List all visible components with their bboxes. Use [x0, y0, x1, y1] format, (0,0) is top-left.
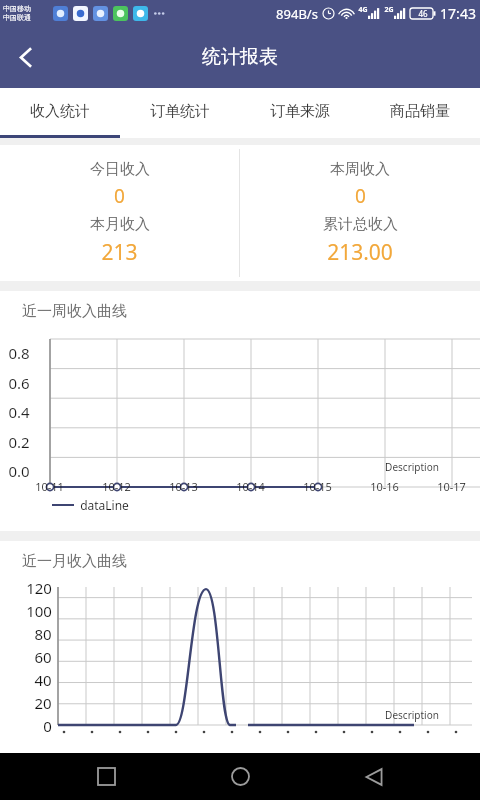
staticText: 100 [26, 601, 52, 621]
button[interactable]: 订单来源 [240, 88, 360, 138]
button[interactable]: Back [0, 31, 52, 83]
button[interactable]: Recent apps [78, 753, 134, 800]
button[interactable]: 本周收入 [240, 145, 480, 281]
staticText: 10-14 [236, 479, 265, 494]
staticText: 收入统计 [30, 102, 90, 121]
staticText: 本周收入 [330, 160, 390, 179]
staticText: Description [385, 708, 439, 722]
staticText: 10-15 [303, 479, 332, 494]
staticText: 17:43 [440, 4, 476, 23]
staticText: 0.6 [8, 373, 30, 393]
staticText: 10-13 [169, 479, 198, 494]
staticText: 40 [34, 670, 52, 690]
staticText: 10-12 [102, 479, 131, 494]
staticText: 本月收入 [90, 215, 150, 234]
button[interactable]: 近一月收入曲线 [0, 541, 480, 753]
staticText: 213 [101, 238, 138, 267]
staticText: 4G [358, 5, 368, 15]
staticText: 0 [43, 716, 52, 736]
staticText: 近一周收入曲线 [22, 302, 127, 321]
button[interactable]: 订单统计 [120, 88, 240, 138]
staticText: dataLine [80, 497, 129, 513]
staticText: 今日收入 [90, 160, 150, 179]
staticText: 商品销量 [390, 102, 450, 121]
button[interactable]: Home [212, 753, 268, 800]
staticText: 近一月收入曲线 [22, 552, 127, 571]
button[interactable]: 商品销量 [360, 88, 480, 138]
staticText: 0.8 [8, 343, 30, 363]
staticText: 213.00 [327, 238, 393, 267]
staticText: 累计总收入 [323, 215, 398, 234]
button[interactable]: 收入统计 [0, 88, 120, 138]
staticText: 2G [384, 5, 394, 15]
staticText: 统计报表 [202, 45, 278, 69]
staticText: Description [385, 460, 439, 474]
button[interactable]: 今日收入 [0, 145, 239, 281]
staticText: 中国联通 [3, 13, 31, 22]
staticText: 中国移动 [3, 4, 31, 13]
staticText: 0.4 [8, 402, 30, 422]
staticText: 订单来源 [270, 102, 330, 121]
staticText: 0.0 [8, 461, 30, 481]
staticText: 10-16 [370, 479, 399, 494]
staticText: 894B/s [276, 5, 318, 23]
staticText: 0.2 [8, 432, 30, 452]
staticText: 10-11 [35, 479, 64, 494]
staticText: 60 [34, 647, 52, 667]
button[interactable]: 近一周收入曲线 [0, 291, 480, 531]
staticText: 20 [34, 693, 52, 713]
staticText: 10-17 [437, 479, 466, 494]
staticText: 0 [355, 183, 366, 209]
staticText: 80 [34, 624, 52, 644]
staticText: 订单统计 [150, 102, 210, 121]
button[interactable]: Back [346, 753, 402, 800]
staticText: 0 [114, 183, 125, 209]
staticText: 120 [26, 578, 52, 598]
staticText: 46 [418, 8, 428, 19]
